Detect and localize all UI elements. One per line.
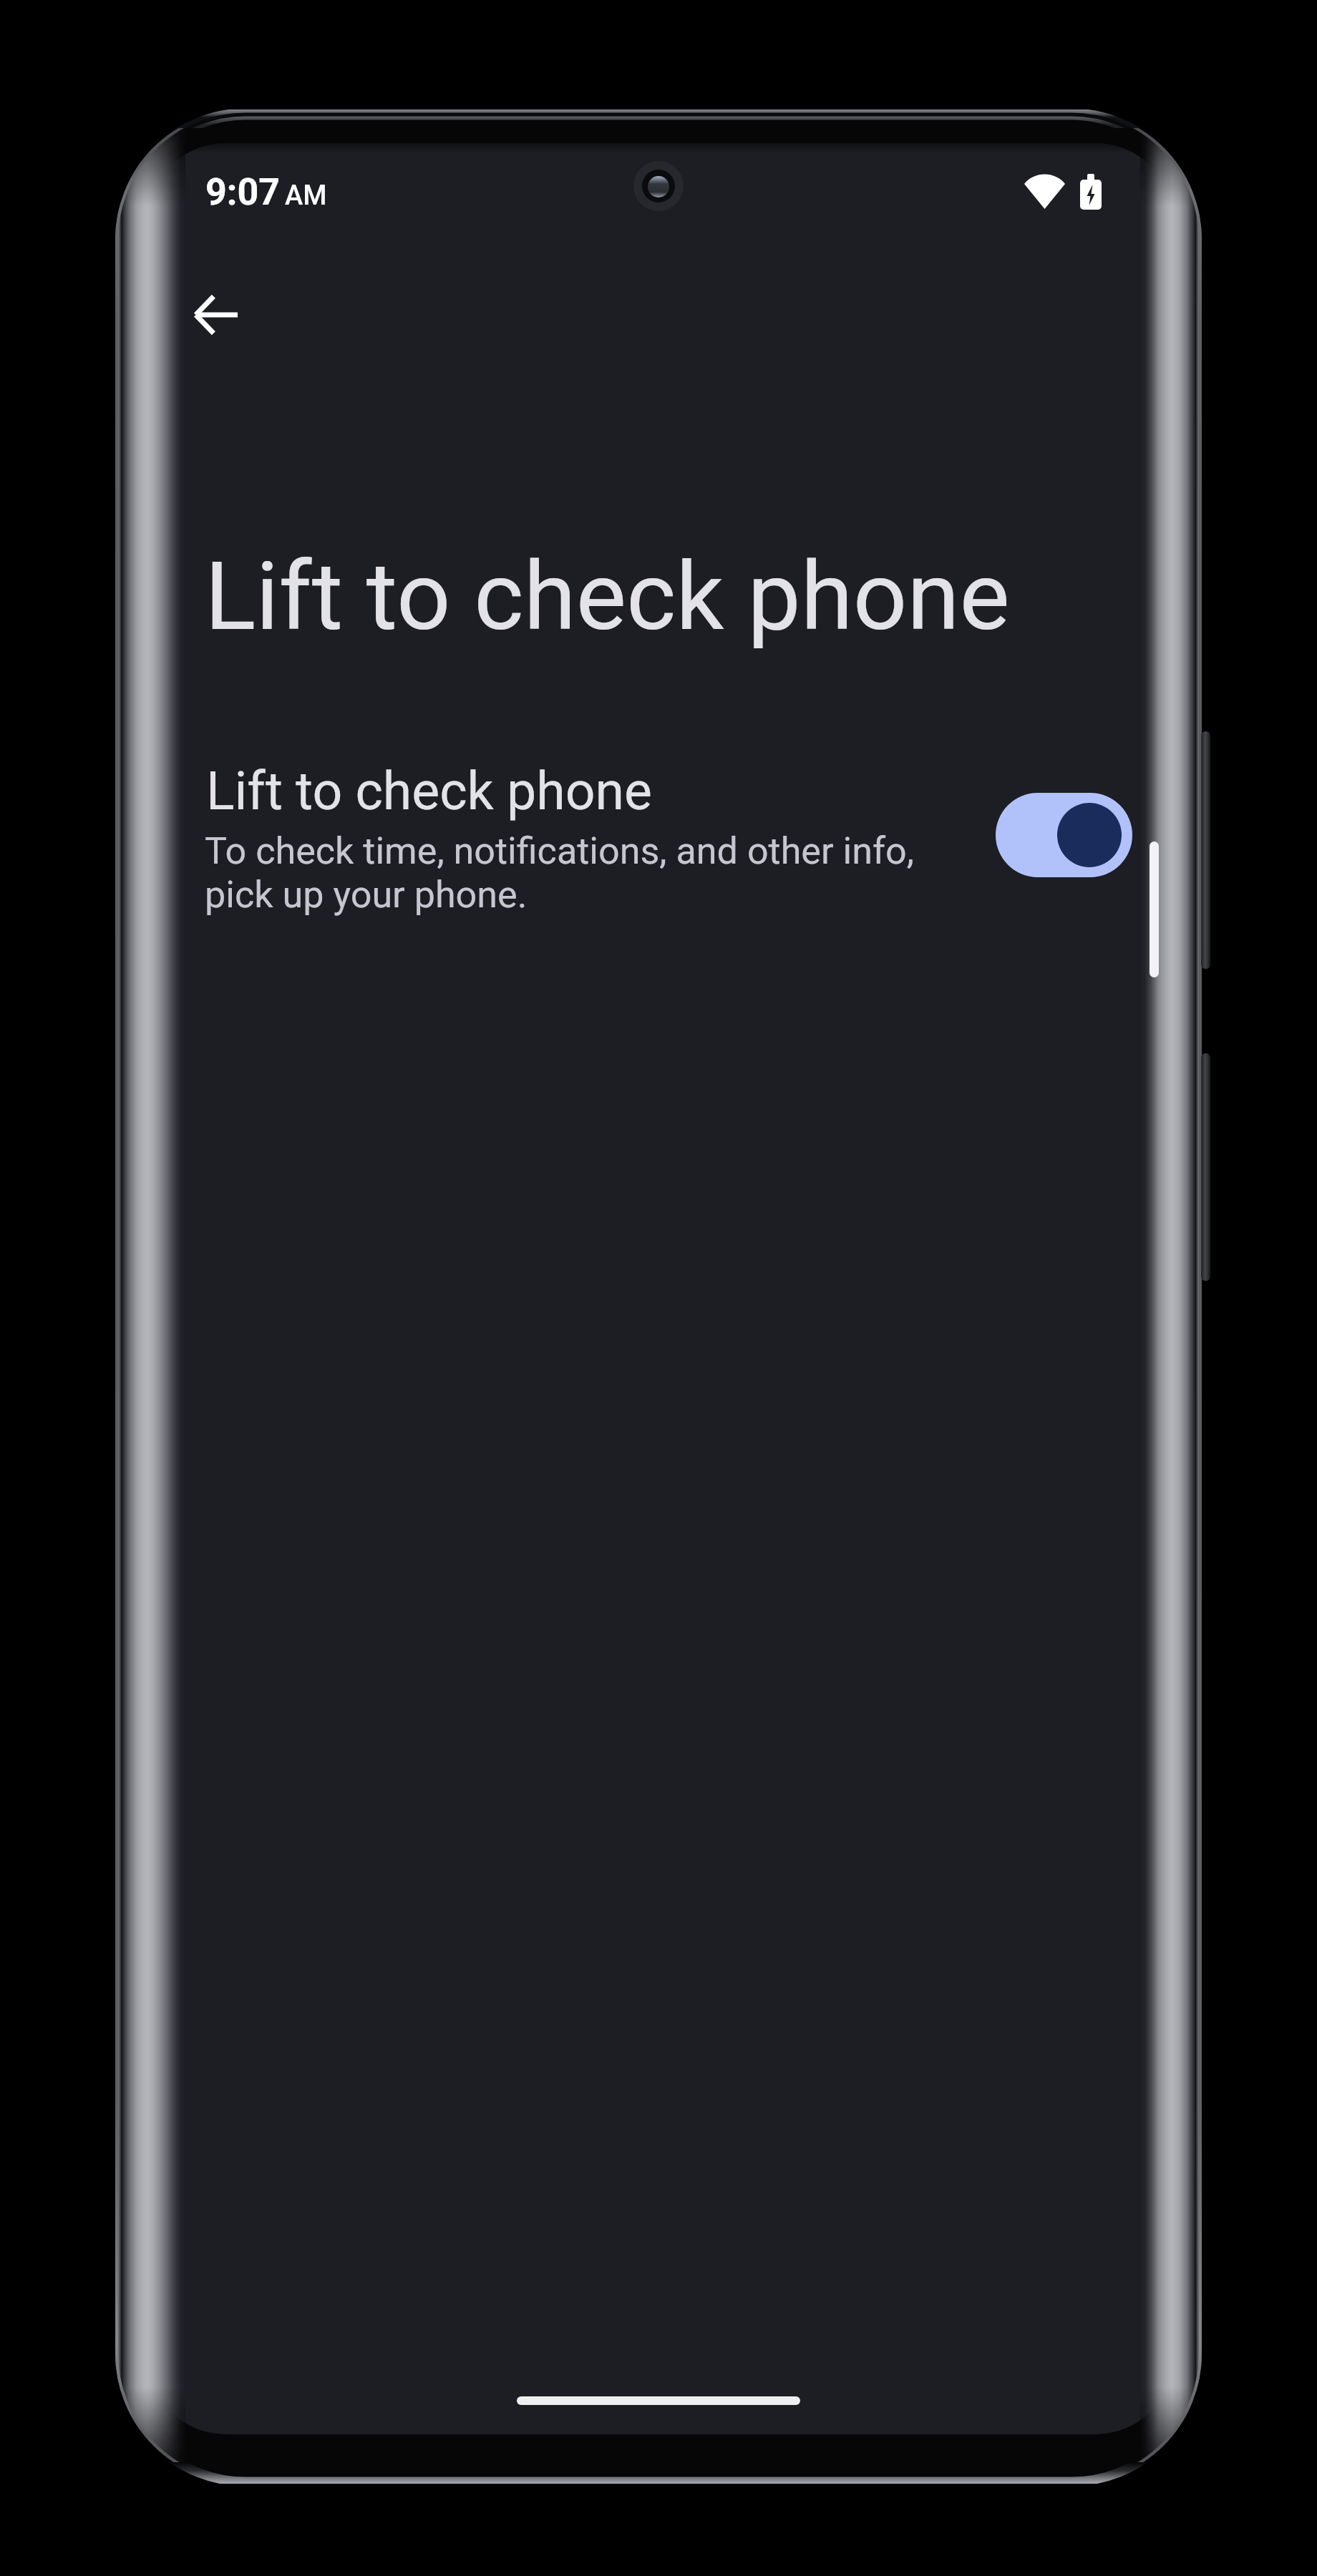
staticText: pick up your phone. — [205, 873, 528, 917]
button[interactable]: Lift to check phone — [146, 728, 1175, 942]
staticText: Lift to check phone — [206, 761, 652, 822]
staticText: Lift to check phone — [205, 541, 1010, 652]
staticText: 9:07 — [205, 170, 281, 214]
staticText: AM — [285, 180, 327, 212]
staticText: To check time, notifications, and other … — [205, 829, 915, 873]
button[interactable]: Lift to check phone, on — [996, 793, 1132, 877]
button[interactable]: Back — [175, 273, 258, 356]
